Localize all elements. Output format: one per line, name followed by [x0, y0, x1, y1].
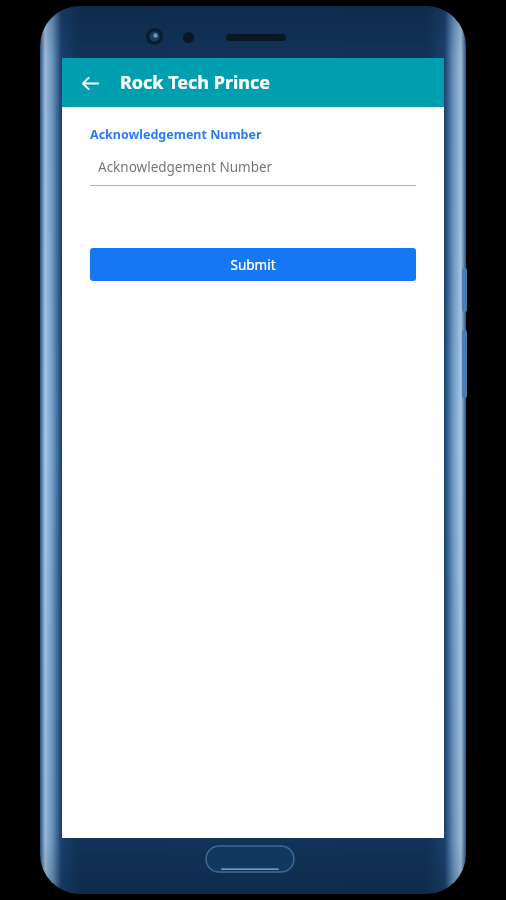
button[interactable]: Home: [205, 845, 295, 873]
staticText: Acknowledgement Number: [98, 158, 273, 176]
staticText: Submit: [230, 256, 276, 274]
staticText: Acknowledgement Number: [90, 126, 262, 143]
button[interactable]: Acknowledgement Number: [90, 154, 416, 186]
button[interactable]: Submit: [90, 248, 416, 281]
staticText: Rock Tech Prince: [120, 70, 271, 95]
button[interactable]: Back: [70, 63, 110, 103]
